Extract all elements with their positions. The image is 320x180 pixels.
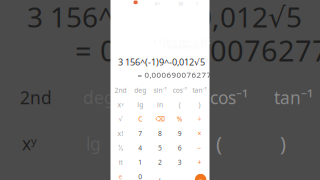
- staticText: (: [216, 130, 222, 157]
- staticText: 2nd: [20, 86, 52, 109]
- staticText: ⌫: [155, 115, 164, 123]
- staticText: C: [138, 115, 142, 123]
- button[interactable]: 5: [150, 141, 170, 155]
- button[interactable]: ): [190, 97, 209, 112]
- staticText: tan⁻¹: [193, 86, 207, 95]
- staticText: 6: [178, 143, 182, 152]
- button[interactable]: ln: [150, 97, 170, 112]
- staticText: deg: [134, 86, 146, 95]
- button[interactable]: 7: [130, 126, 150, 141]
- staticText: xʸ: [22, 132, 37, 155]
- button[interactable]: π: [110, 155, 130, 169]
- staticText: 8: [158, 129, 162, 138]
- button[interactable]: 9: [170, 126, 190, 141]
- button[interactable]: √: [110, 112, 130, 126]
- staticText: e: [118, 172, 122, 180]
- staticText: deg: [83, 86, 115, 109]
- button[interactable]: e: [110, 169, 130, 180]
- staticText: ln: [150, 132, 165, 155]
- staticText: 5: [158, 143, 162, 152]
- button[interactable]: 2: [150, 155, 170, 169]
- staticText: ×: [198, 129, 202, 138]
- staticText: 0: [138, 172, 142, 180]
- staticText: = 0,000690076277: [137, 69, 211, 80]
- button[interactable]: xʸ: [110, 97, 130, 112]
- button[interactable]: ⌫: [150, 112, 170, 126]
- button[interactable]: (: [170, 97, 190, 112]
- staticText: cos⁻¹: [210, 86, 248, 109]
- button[interactable]: Equals: [190, 169, 209, 180]
- button[interactable]: ×: [190, 126, 209, 141]
- staticText: ): [199, 100, 201, 109]
- staticText: 7: [138, 129, 142, 138]
- button[interactable]: C: [130, 112, 150, 126]
- staticText: (: [179, 100, 181, 109]
- staticText: 1: [138, 158, 142, 167]
- button[interactable]: −: [190, 141, 209, 155]
- staticText: 1: [195, 0, 198, 7]
- staticText: √: [118, 115, 122, 123]
- button[interactable]: tan⁻¹: [190, 83, 209, 97]
- staticText: 2nd: [114, 86, 126, 95]
- button[interactable]: 3: [170, 155, 190, 169]
- staticText: ¹⁄ₓ: [118, 143, 123, 152]
- staticText: +: [198, 158, 202, 167]
- staticText: 4: [138, 143, 142, 152]
- staticText: =: [199, 175, 203, 180]
- staticText: x!: [117, 129, 123, 138]
- staticText: lg: [86, 132, 101, 155]
- button[interactable]: 6: [170, 141, 190, 155]
- button[interactable]: 2nd: [110, 83, 130, 97]
- staticText: cos⁻¹: [173, 86, 187, 95]
- staticText: ln: [157, 100, 163, 109]
- button[interactable]: ÷: [190, 112, 209, 126]
- staticText: sin⁻¹: [146, 86, 181, 109]
- staticText: 3 156^(-1)9^-0,012√5: [152, 37, 220, 45]
- staticText: π: [118, 158, 122, 167]
- button[interactable]: %: [170, 112, 190, 126]
- button[interactable]: deg: [130, 83, 150, 97]
- button[interactable]: 0: [130, 169, 150, 180]
- staticText: 3 156^(-1)9^-0,012√5: [27, 0, 302, 35]
- staticText: ): [280, 130, 286, 157]
- staticText: 3 156^(-1)9^-0,012√5: [118, 56, 205, 68]
- staticText: xʸ: [117, 100, 123, 109]
- button[interactable]: cos⁻¹: [170, 83, 190, 97]
- staticText: 9: [178, 129, 182, 138]
- staticText: 2: [158, 158, 162, 167]
- button[interactable]: lg: [130, 97, 150, 112]
- staticText: sin⁻¹: [153, 86, 166, 95]
- staticText: W: [178, 0, 183, 7]
- button[interactable]: 1: [130, 155, 150, 169]
- button[interactable]: 4: [130, 141, 150, 155]
- button[interactable]: sin⁻¹: [150, 83, 170, 97]
- button[interactable]: ,: [150, 169, 170, 180]
- staticText: %: [177, 115, 183, 123]
- staticText: 3: [178, 158, 182, 167]
- button[interactable]: 8: [150, 126, 170, 141]
- button[interactable]: ¹⁄ₓ: [110, 141, 130, 155]
- staticText: lg: [137, 100, 143, 109]
- button[interactable]: +: [190, 155, 209, 169]
- staticText: −: [198, 143, 202, 152]
- staticText: 4+: [154, 0, 160, 7]
- staticText: = 0,000690076277: [75, 31, 320, 69]
- button[interactable]: x!: [110, 126, 130, 141]
- staticText: ,: [159, 172, 161, 180]
- staticText: tan⁻¹: [274, 86, 313, 109]
- staticText: ÷: [198, 115, 202, 123]
